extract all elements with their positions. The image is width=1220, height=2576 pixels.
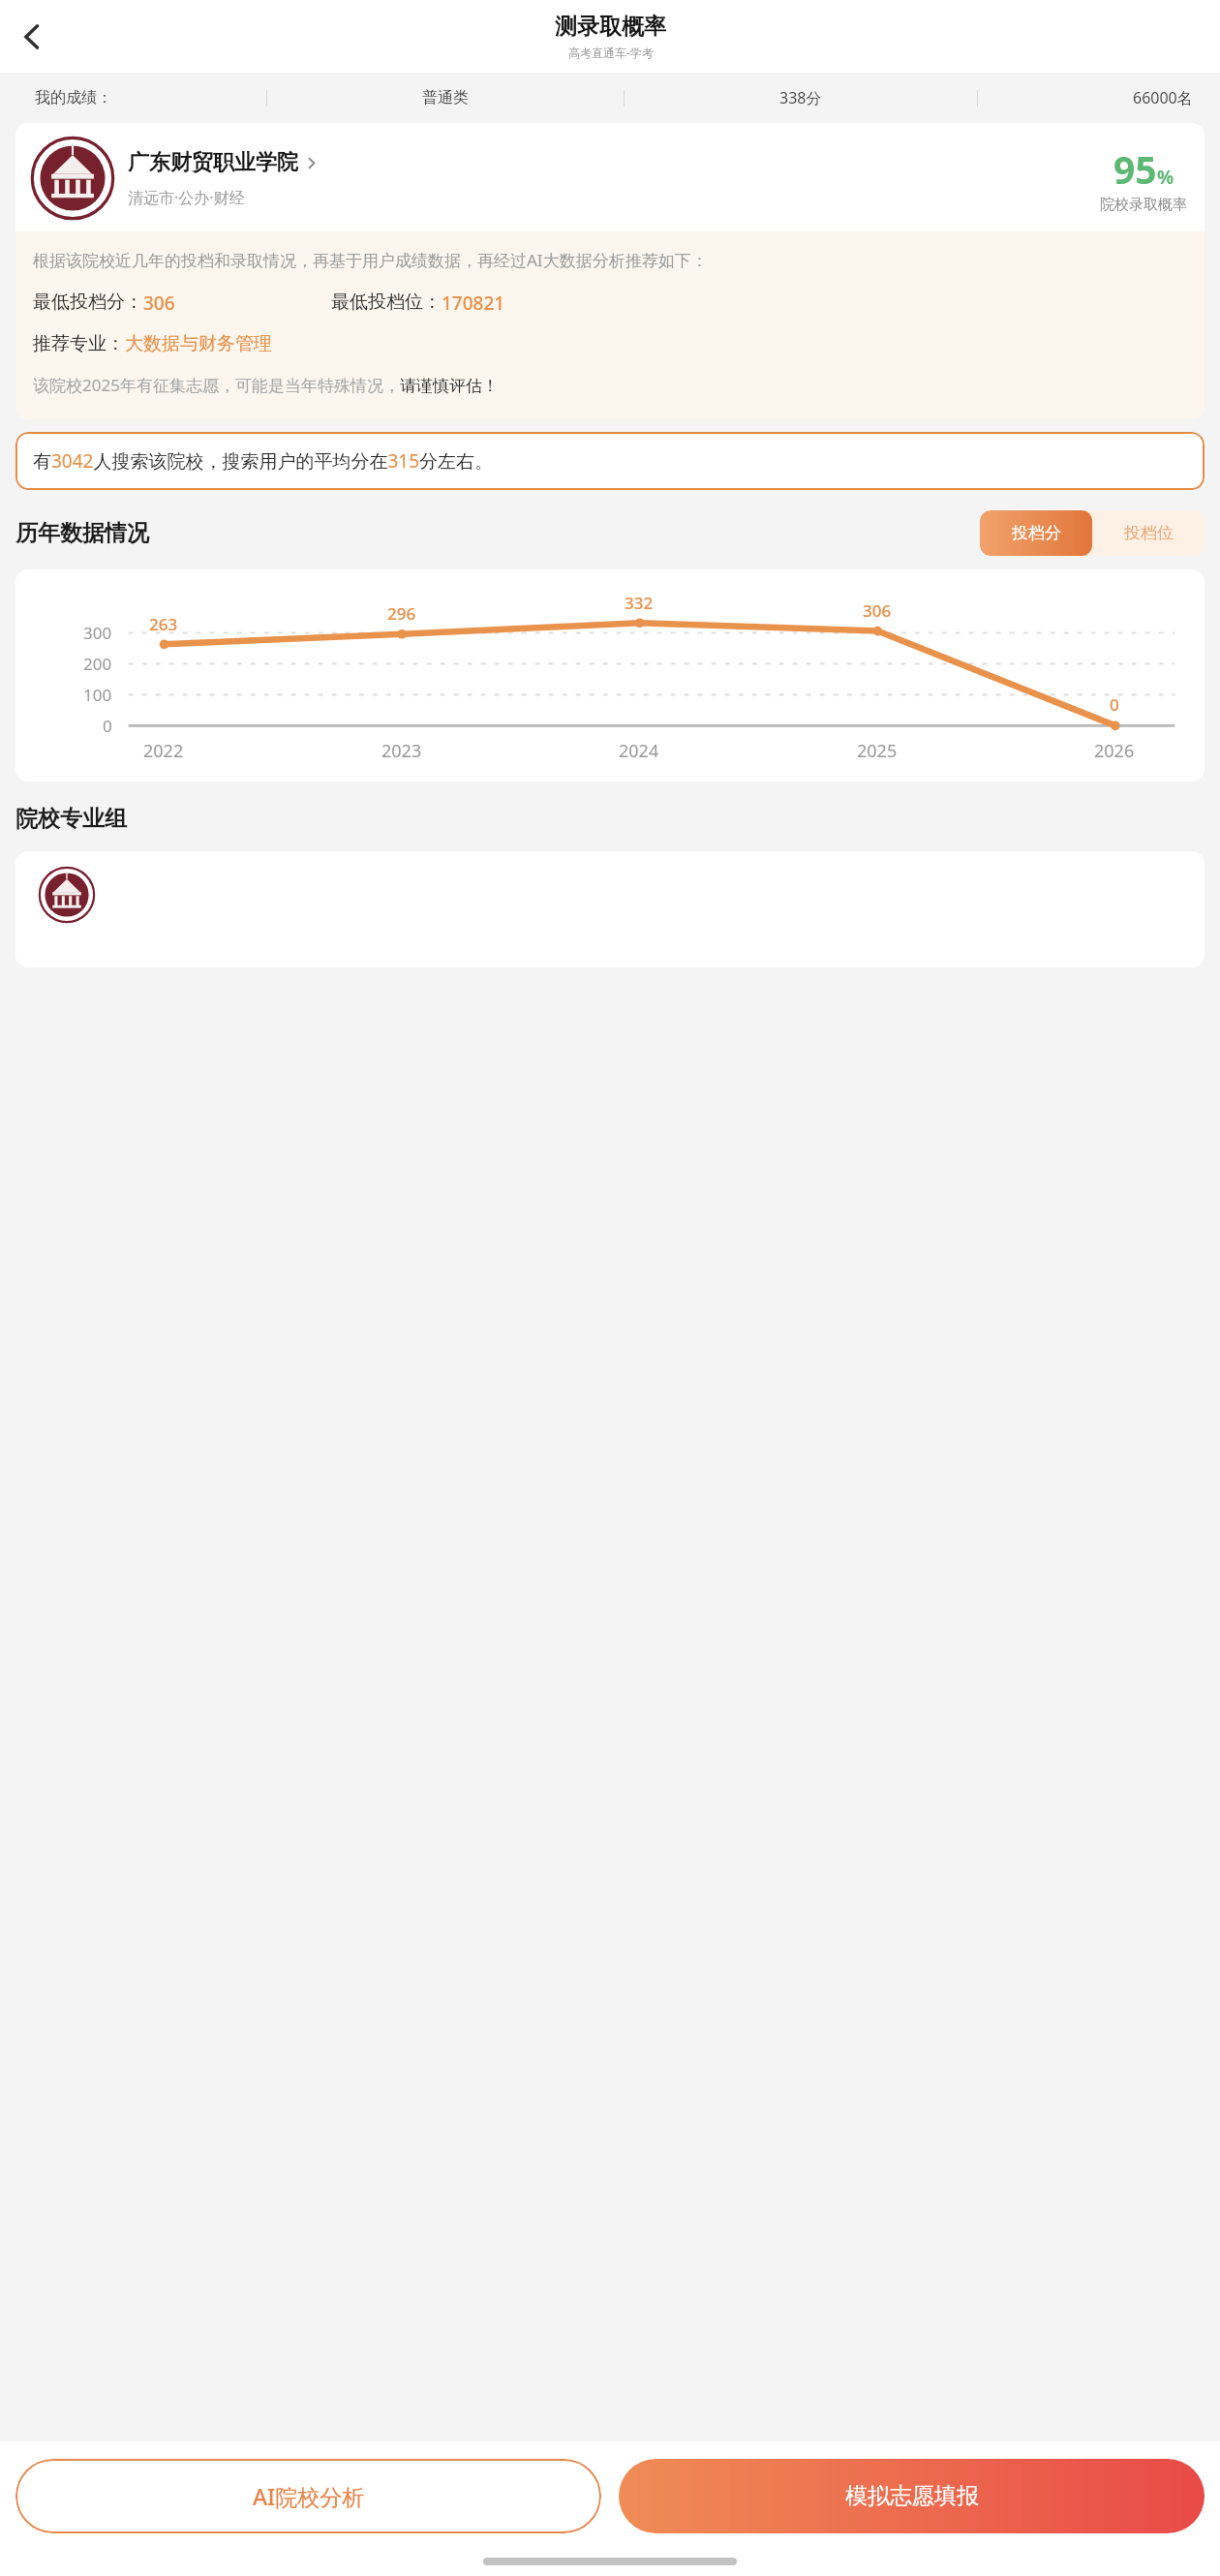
- staticText: 根据该院校近几年的投档和录取情况，再基于用户成绩数据，再经过AI大数据分析推荐如…: [33, 249, 708, 271]
- staticText: 测录取概率: [555, 13, 666, 41]
- staticText: 普通类: [422, 88, 469, 107]
- staticText: 该院校2025年有征集志愿，可能是当年特殊情况，请谨慎评估！: [33, 374, 499, 396]
- staticText: 296: [387, 602, 416, 625]
- staticText: 170821: [442, 291, 505, 316]
- button[interactable]: 模拟志愿填报: [619, 2459, 1205, 2533]
- staticText: 100: [83, 684, 112, 706]
- button[interactable]: [15, 851, 1205, 967]
- staticText: 2023: [381, 739, 422, 763]
- staticText: 200: [83, 653, 112, 675]
- staticText: 0: [1110, 693, 1119, 716]
- staticText: 300: [83, 622, 112, 644]
- staticText: 推荐专业：: [33, 332, 125, 355]
- staticText: 院校录取概率: [1100, 196, 1187, 214]
- staticText: 0: [103, 715, 112, 737]
- staticText: 历年数据情况: [15, 519, 149, 547]
- staticText: 最低投档位：: [331, 291, 442, 314]
- button[interactable]: 投档分: [980, 510, 1092, 556]
- staticText: 模拟志愿填报: [845, 2482, 979, 2510]
- staticText: 有3042人搜索该院校，搜索用户的平均分在315分左右。: [33, 448, 494, 474]
- staticText: 338分: [779, 87, 822, 108]
- button[interactable]: 广东财贸职业学院: [15, 123, 1205, 231]
- staticText: 332: [625, 592, 654, 614]
- staticText: 306: [143, 291, 175, 316]
- button[interactable]: 投档位: [1092, 510, 1205, 556]
- staticText: AI院校分析: [253, 2481, 365, 2511]
- staticText: 263: [149, 613, 178, 635]
- staticText: 2025: [857, 739, 898, 763]
- staticText: 投档位: [1124, 523, 1174, 543]
- staticText: 95: [1113, 143, 1157, 195]
- staticText: 66000名: [1133, 87, 1193, 108]
- staticText: 我的成绩：: [35, 88, 112, 107]
- staticText: 最低投档分：: [33, 291, 143, 314]
- staticText: 院校专业组: [15, 805, 127, 833]
- button[interactable]: AI院校分析: [15, 2459, 601, 2533]
- staticText: 清远市·公办·财经: [128, 187, 245, 208]
- staticText: 2026: [1094, 739, 1135, 763]
- button[interactable]: 有3042人搜索该院校，搜索用户的平均分在315分左右。: [15, 432, 1205, 490]
- staticText: 高考直通车-学考: [568, 45, 654, 60]
- staticText: 306: [863, 599, 892, 622]
- staticText: 大数据与财务管理: [125, 332, 272, 355]
- staticText: 2024: [619, 739, 659, 763]
- staticText: 投档分: [1012, 523, 1061, 543]
- staticText: 广东财贸职业学院: [128, 149, 298, 176]
- staticText: %: [1157, 165, 1174, 190]
- button[interactable]: Back: [6, 11, 58, 63]
- staticText: 2022: [143, 739, 184, 763]
